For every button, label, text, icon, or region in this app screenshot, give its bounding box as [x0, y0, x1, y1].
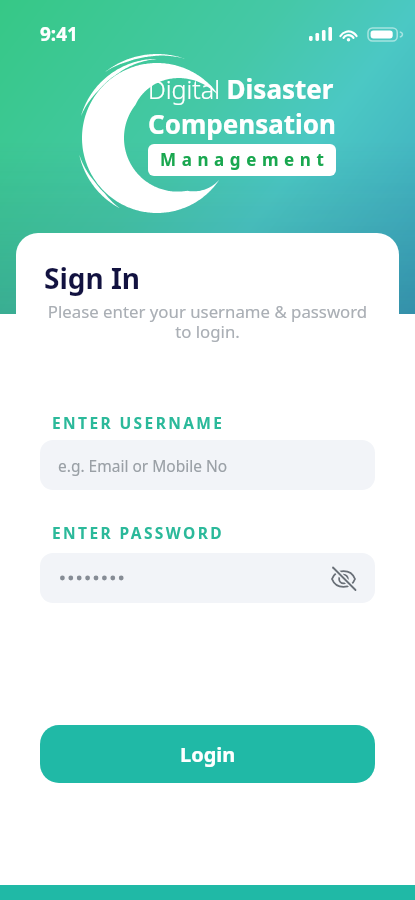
staticText: Compensation	[148, 106, 336, 141]
staticText: ENTER USERNAME	[52, 412, 225, 433]
button[interactable]: Show password	[40, 553, 375, 603]
staticText: e.g. Email or Mobile No	[58, 455, 228, 476]
button[interactable]: Login	[40, 725, 375, 783]
staticText: Please enter your username & password to…	[20, 300, 395, 343]
button[interactable]: e.g. Email or Mobile No	[40, 440, 375, 490]
button[interactable]: Show password	[323, 558, 363, 598]
staticText: ENTER PASSWORD	[52, 522, 224, 543]
staticText: Digital Disaster	[148, 71, 334, 106]
staticText: 9:41	[40, 21, 78, 47]
staticText: Login	[180, 741, 236, 768]
staticText: Management	[160, 148, 330, 171]
staticText: Sign In	[44, 259, 141, 297]
